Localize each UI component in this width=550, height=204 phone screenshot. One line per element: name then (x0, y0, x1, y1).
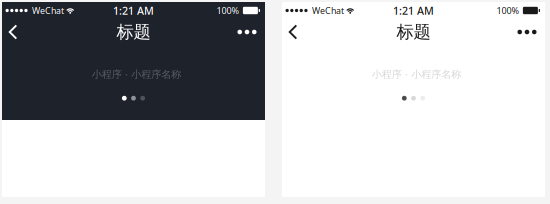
staticText: 1:21 AM (113, 3, 154, 18)
button[interactable]: More (234, 19, 260, 45)
staticText: 小程序名称 (131, 68, 181, 81)
staticText: 小程序名称 (411, 68, 461, 81)
button[interactable]: More (514, 19, 540, 45)
staticText: 标题 (396, 21, 430, 43)
button[interactable]: Back (284, 19, 302, 45)
staticText: 标题 (116, 21, 150, 43)
staticText: 100% (216, 4, 239, 17)
staticText: · (405, 67, 408, 81)
staticText: 100% (496, 4, 519, 17)
staticText: · (125, 67, 128, 81)
button[interactable]: Back (4, 19, 22, 45)
staticText: 小程序 (92, 68, 122, 81)
staticText: WeChat (32, 4, 64, 16)
staticText: WeChat (312, 4, 344, 16)
staticText: 小程序 (372, 68, 402, 81)
staticText: 1:21 AM (393, 3, 434, 18)
